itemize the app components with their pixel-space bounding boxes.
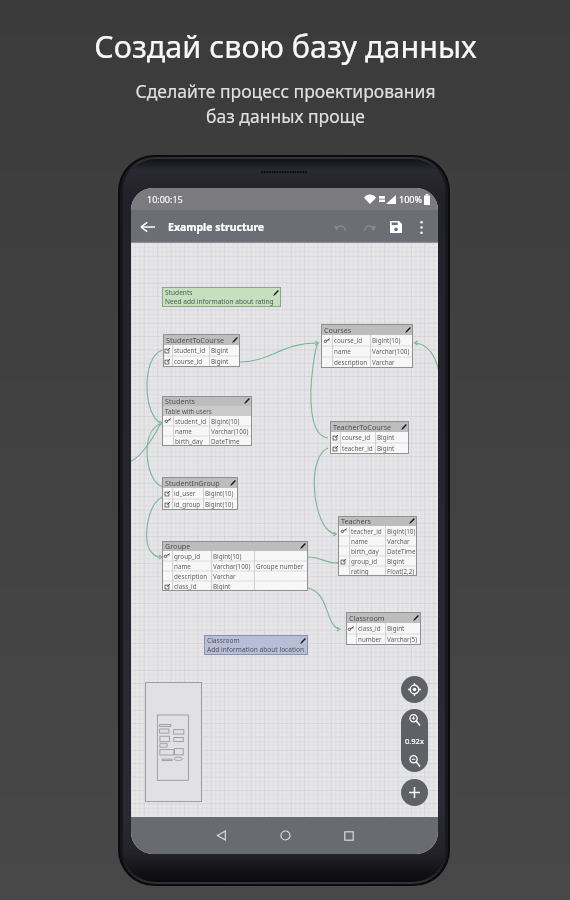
staticText: Varchar [387, 537, 410, 546]
staticText: class_id [358, 624, 381, 633]
button[interactable]: More options [409, 215, 433, 239]
staticText: Bigint(10) [213, 552, 242, 561]
staticText: Bigint(10) [205, 489, 234, 498]
staticText: Bigint [387, 557, 405, 566]
staticText: number [358, 635, 382, 644]
button[interactable]: Recents [329, 817, 369, 854]
staticText: 100% [399, 193, 422, 205]
button[interactable]: Undo [327, 213, 355, 241]
staticText: rating [351, 567, 369, 576]
staticText: 0.92x [405, 736, 424, 746]
staticText: Bigint [213, 582, 231, 591]
button[interactable]: Zoom in [401, 709, 428, 731]
button[interactable]: Redo [355, 213, 383, 241]
button[interactable]: Students [162, 287, 281, 307]
staticText: Varchar(100) [213, 562, 251, 571]
staticText: Courses [324, 325, 352, 335]
staticText: id_user [174, 489, 196, 498]
staticText: id_group [174, 500, 201, 509]
button[interactable]: Save [383, 214, 409, 240]
staticText: Groupe [165, 541, 191, 551]
staticText: Teachers [341, 516, 371, 526]
staticText: Add information about location [207, 645, 305, 654]
staticText: Bigint [377, 433, 395, 442]
staticText: birth_day [351, 547, 379, 556]
staticText: 10:00:15 [147, 193, 183, 205]
button[interactable]: TeacherToCourse [330, 421, 409, 454]
staticText: description [174, 572, 208, 581]
staticText: group_id [174, 552, 201, 561]
staticText: Example structure [168, 220, 265, 234]
button[interactable]: Back [131, 210, 165, 243]
staticText: Float(2,2) [387, 567, 415, 576]
staticText: Classroom [349, 613, 385, 623]
staticText: Bigint [377, 444, 395, 453]
staticText: Создай свою базу данных [94, 25, 477, 67]
staticText: DateTime [387, 547, 416, 556]
staticText: Bigint [211, 357, 229, 366]
button[interactable]: Back [201, 817, 241, 854]
staticText: Students [165, 288, 193, 297]
staticText: group_id [351, 557, 378, 566]
button[interactable]: StudentInGroup [162, 477, 238, 510]
staticText: Bigint(10) [387, 527, 416, 536]
staticText: Table with users [165, 407, 212, 415]
staticText: Bigint(10) [372, 336, 401, 345]
staticText: Varchar(100) [372, 347, 410, 356]
button[interactable]: Classroom [346, 612, 421, 645]
staticText: Varchar(100) [211, 427, 249, 436]
staticText: course_id [334, 336, 363, 345]
staticText: Groupe number [256, 562, 304, 571]
staticText: class_id [174, 582, 197, 591]
staticText: description [334, 358, 368, 367]
staticText: Students [165, 396, 195, 406]
staticText: Bigint [387, 624, 405, 633]
staticText: Classroom [207, 636, 240, 645]
staticText: name [175, 427, 192, 436]
staticText: Need add information about rating [165, 297, 274, 306]
staticText: name [334, 347, 351, 356]
staticText: student_id [175, 417, 207, 426]
staticText: Bigint(10) [211, 417, 240, 426]
staticText: course_id [342, 433, 371, 442]
button[interactable]: Courses [321, 324, 413, 368]
staticText: Varchar(5) [387, 635, 418, 644]
staticText: Varchar [213, 572, 236, 581]
staticText: Сделайте процесс проектирования баз данн… [135, 79, 436, 129]
staticText: birth_day [175, 437, 203, 446]
staticText: Bigint [211, 346, 229, 355]
button[interactable]: Zoom out [401, 750, 428, 772]
button[interactable]: StudentToCourse [163, 334, 240, 367]
button[interactable]: Teachers [338, 516, 417, 576]
staticText: StudentInGroup [165, 478, 220, 488]
button[interactable]: Home [265, 817, 305, 854]
staticText: DateTime [211, 437, 240, 446]
staticText: name [174, 562, 191, 571]
staticText: Varchar [372, 358, 395, 367]
staticText: name [351, 537, 368, 546]
staticText: course_id [174, 357, 203, 366]
staticText: StudentToCourse [166, 335, 225, 345]
button[interactable]: Groupe [162, 541, 308, 591]
button[interactable]: Students [162, 396, 252, 446]
button[interactable]: Minimap [145, 682, 202, 802]
button[interactable]: Add table [401, 779, 428, 806]
staticText: Bigint(10) [205, 500, 234, 509]
button[interactable]: Classroom [204, 635, 308, 655]
staticText: teacher_id [351, 527, 382, 536]
button[interactable]: Center view [401, 676, 428, 703]
staticText: student_id [174, 346, 206, 355]
staticText: TeacherToCourse [333, 422, 392, 432]
staticText: teacher_id [342, 444, 373, 453]
